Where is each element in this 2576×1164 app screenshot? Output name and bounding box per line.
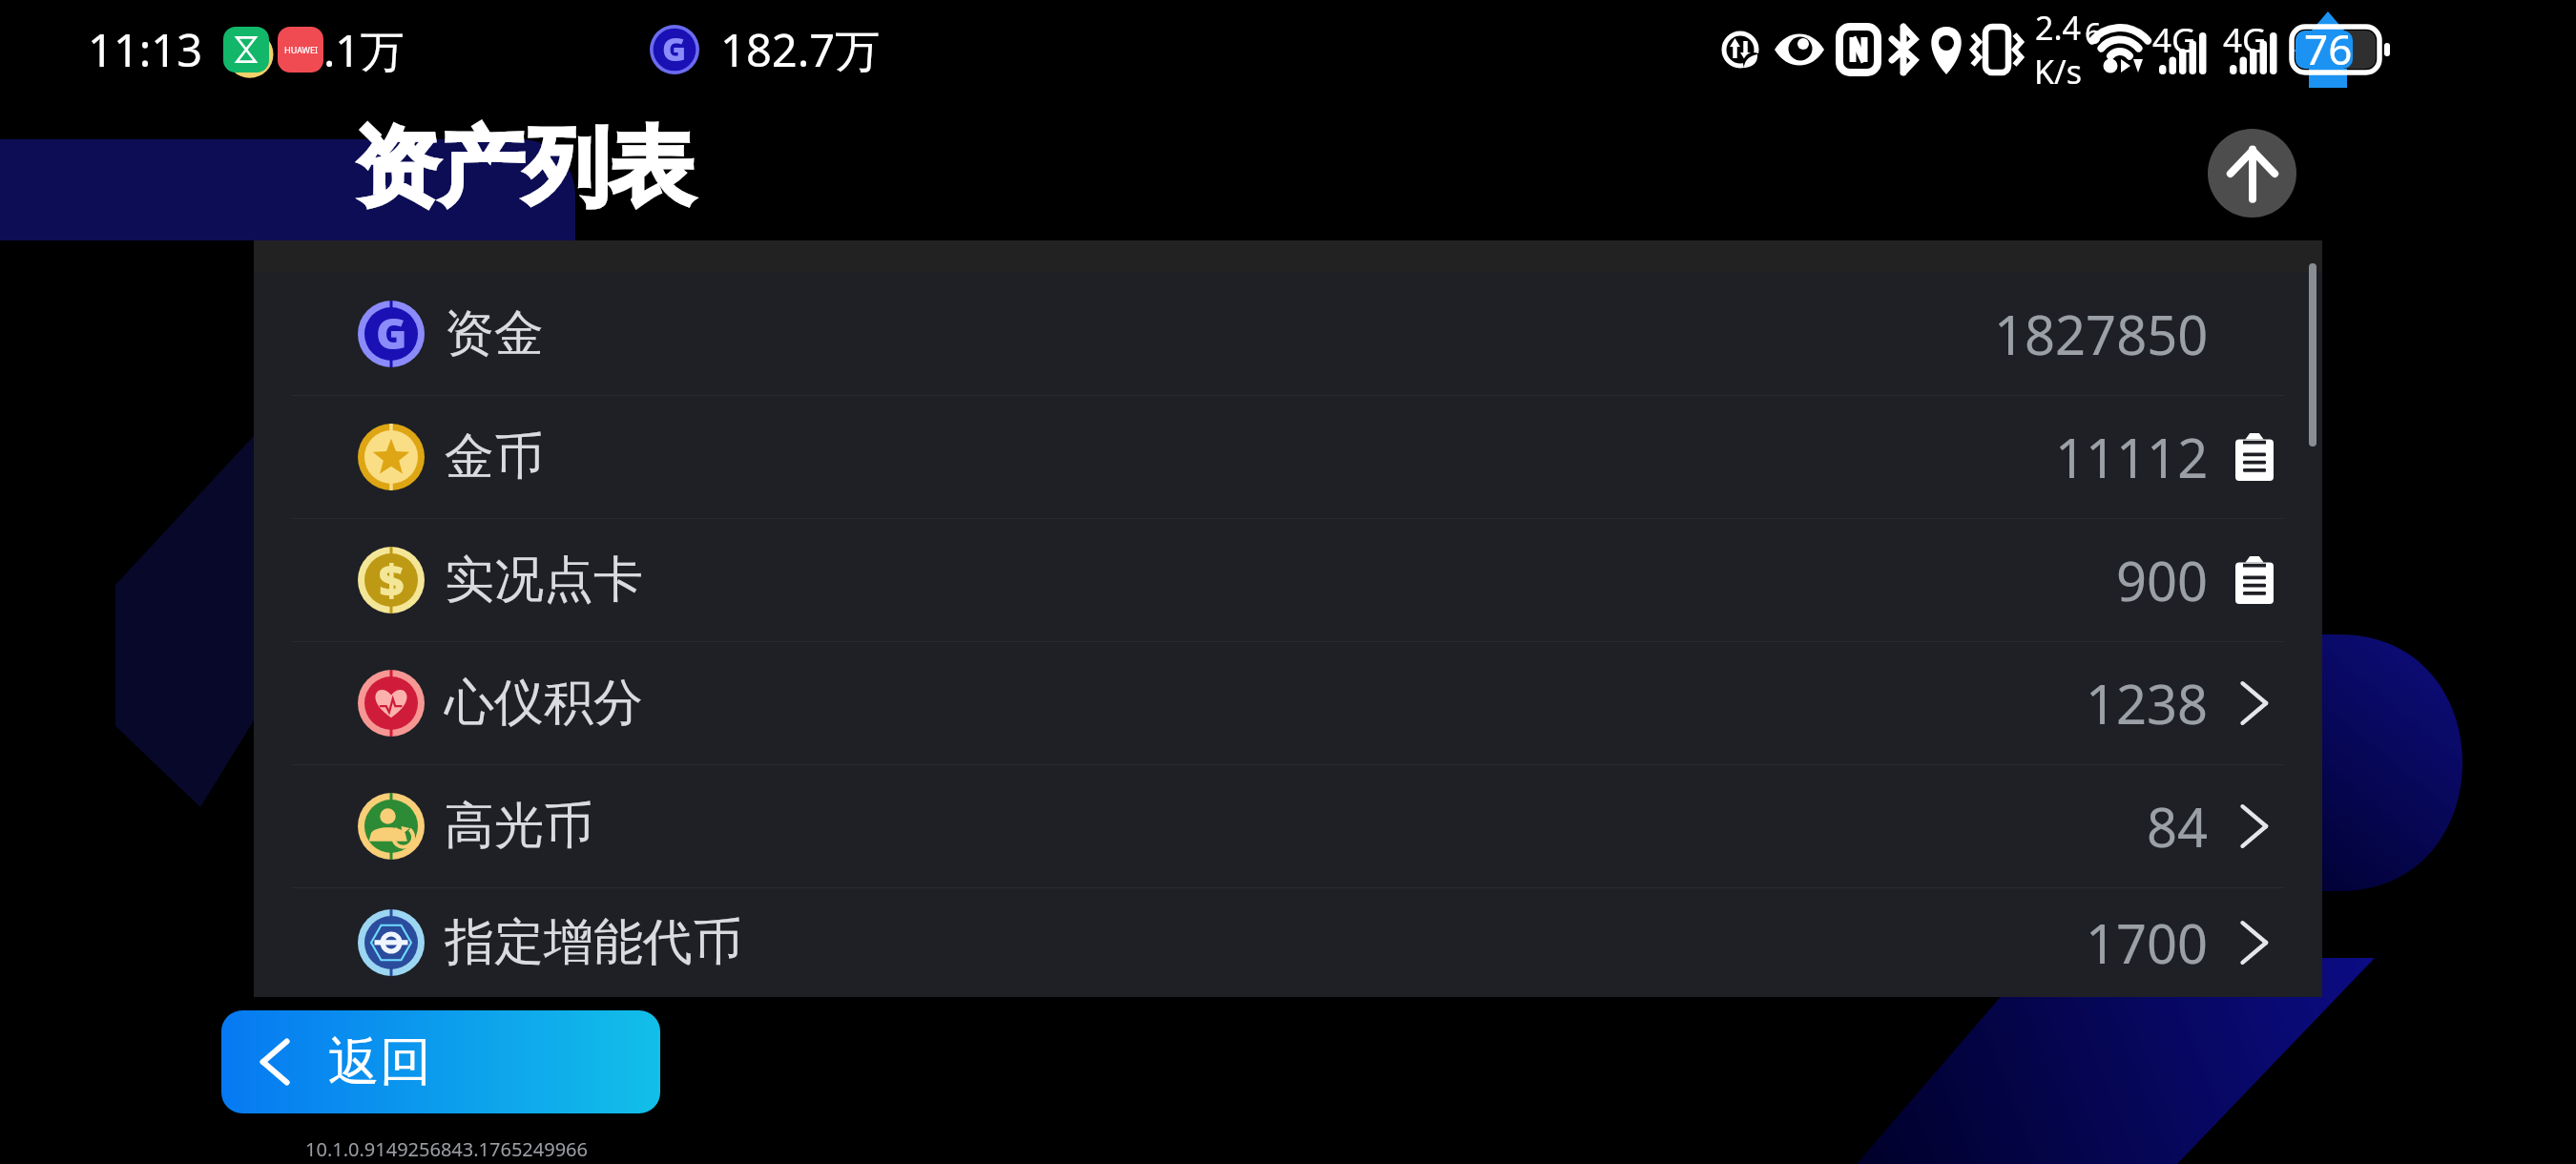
staticText: .1万 [323, 20, 405, 80]
staticText: 实况点卡 [445, 549, 643, 612]
button[interactable]: 高光币 [254, 764, 2322, 887]
staticText: 4G [2223, 17, 2267, 63]
button[interactable]: Scroll to top [2208, 129, 2296, 218]
staticText: 84 [2147, 790, 2209, 863]
staticText: 1827850 [1994, 298, 2209, 370]
staticText: HUAWEI [284, 44, 318, 55]
staticText: 金币 [445, 426, 544, 488]
staticText: G [376, 304, 407, 362]
staticText: 1700 [2086, 906, 2209, 979]
staticText: 11:13 [88, 19, 203, 80]
staticText: 高光币 [445, 795, 593, 858]
staticText: 指定增能代币 [445, 911, 742, 974]
button[interactable]: Copy ${item.label} [2209, 518, 2299, 641]
button[interactable]: Open ${item.label} [2209, 641, 2299, 764]
button[interactable]: 金币 [254, 395, 2322, 518]
staticText: 1238 [2086, 667, 2209, 739]
button[interactable]: 返回 [221, 1010, 660, 1113]
button[interactable]: $ [254, 518, 2322, 641]
staticText: 11112 [2055, 421, 2209, 493]
staticText: 资金 [445, 302, 544, 365]
staticText: 900 [2116, 544, 2209, 616]
staticText: 6 [2085, 12, 2102, 52]
button[interactable]: 指定增能代币 [254, 887, 2322, 997]
staticText: 10.1.0.9149256843.1765249966 [305, 1136, 588, 1162]
staticText: $ [379, 550, 405, 610]
staticText: G [662, 27, 687, 71]
staticText: 资产列表 [354, 114, 694, 221]
staticText: 2.4 [2035, 6, 2082, 50]
staticText: 心仪积分 [445, 672, 643, 735]
button[interactable]: Open ${item.label} [2209, 887, 2299, 997]
staticText: 返回 [328, 1029, 431, 1094]
button[interactable]: G [254, 272, 2322, 395]
staticText: 182.7万 [720, 19, 881, 80]
button[interactable]: Copy ${item.label} [2209, 395, 2299, 518]
staticText: 76 [2304, 20, 2353, 77]
staticText: K/s [2034, 50, 2082, 94]
button[interactable]: 心仪积分 [254, 641, 2322, 764]
button[interactable]: Open ${item.label} [2209, 764, 2299, 887]
staticText: 4G [2152, 17, 2196, 63]
